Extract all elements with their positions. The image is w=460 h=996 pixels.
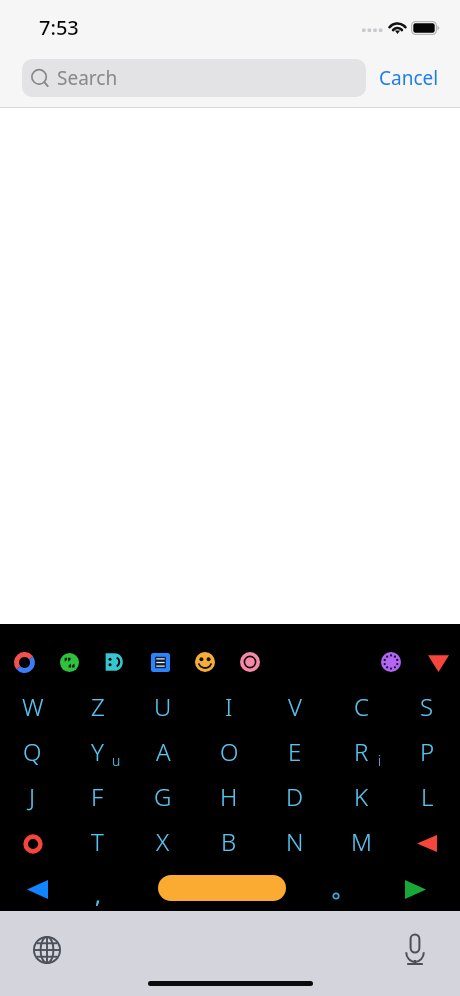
staticText: V [288,690,302,723]
button[interactable]: A [130,729,196,774]
button[interactable]: Stickers [93,641,135,683]
staticText: i [378,751,382,770]
button[interactable]: Settings [370,641,412,683]
button[interactable]: Record [229,641,271,683]
button[interactable]: J [0,774,65,819]
button[interactable]: Cancel [372,59,446,97]
staticText: R [354,735,369,768]
button[interactable]: B [196,819,262,864]
staticText: F [91,780,104,813]
button[interactable]: Hide keyboard [417,641,459,683]
staticText: T [91,825,104,858]
button[interactable]: V [262,684,328,729]
staticText: E [288,735,302,768]
button[interactable]: F [65,774,130,819]
button[interactable]: X [130,819,196,864]
button[interactable]: Q [0,729,65,774]
staticText: Search [57,65,118,91]
button[interactable]: N [262,819,328,864]
staticText: W [22,690,44,723]
button[interactable]: S [394,684,460,729]
button[interactable]: Period [313,873,358,918]
button[interactable]: O [196,729,262,774]
button[interactable]: T [65,819,130,864]
button[interactable]: H [196,774,262,819]
staticText: C [354,690,369,723]
button[interactable]: Y [65,729,130,774]
staticText: X [156,825,170,858]
button[interactable]: Z [65,684,130,729]
button[interactable]: U [130,684,196,729]
button[interactable]: Backspace [394,819,460,864]
button[interactable]: K [328,774,394,819]
button[interactable]: E [262,729,328,774]
button[interactable]: R [328,729,394,774]
button[interactable]: W [0,684,65,729]
button[interactable]: M [328,819,394,864]
button[interactable]: Shift [0,819,65,864]
button[interactable]: Next [393,867,438,912]
button[interactable]: Search [22,59,366,97]
staticText: Q [23,735,42,768]
staticText: Z [91,690,105,723]
staticText: K [354,780,369,813]
staticText: H [220,780,238,813]
staticText: P [420,735,435,768]
button[interactable]: Clipboard [139,641,181,683]
staticText: I [225,690,233,723]
staticText: L [421,780,434,813]
staticText: A [156,735,171,768]
staticText: J [29,780,36,813]
button[interactable]: Translate [48,641,90,683]
staticText: G [154,780,172,813]
staticText: Y [91,735,104,768]
button[interactable]: I [196,684,262,729]
staticText: u [112,751,121,770]
button[interactable]: Space [158,875,286,901]
staticText: O [220,735,239,768]
staticText: M [351,825,372,858]
button[interactable]: Siri [3,641,45,683]
button[interactable]: Dictation [392,927,437,972]
button[interactable]: Previous [15,867,60,912]
staticText: N [286,825,304,858]
staticText: D [286,780,304,813]
staticText: U [154,690,172,723]
button[interactable]: D [262,774,328,819]
button[interactable]: , [75,864,120,909]
staticText: Cancel [379,65,439,91]
button[interactable]: G [130,774,196,819]
button[interactable]: L [394,774,460,819]
button[interactable]: Change keyboard [24,927,69,972]
staticText: , [95,879,101,909]
staticText: 7:53 [39,14,79,41]
button[interactable]: P [394,729,460,774]
staticText: S [420,690,434,723]
button[interactable]: Emoji [184,641,226,683]
button[interactable]: C [328,684,394,729]
staticText: B [221,825,237,858]
